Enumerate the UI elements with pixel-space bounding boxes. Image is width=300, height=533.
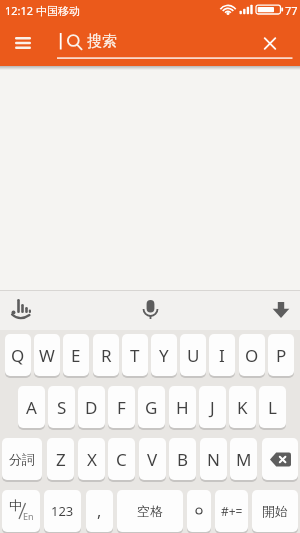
staticText: 12:12 中国移动 <box>5 3 80 18</box>
staticText: C <box>116 448 127 471</box>
button[interactable]: Y <box>151 334 177 376</box>
button[interactable]: 123 <box>44 490 81 532</box>
staticText: , <box>97 500 102 522</box>
button[interactable]: Z <box>47 438 74 480</box>
button[interactable]: H <box>169 386 196 428</box>
staticText: E <box>71 344 81 367</box>
staticText: #+= <box>221 503 243 519</box>
button[interactable]: F <box>108 386 135 428</box>
staticText: K <box>237 396 248 419</box>
button[interactable]: T <box>122 334 148 376</box>
button[interactable]: X <box>78 438 105 480</box>
staticText: X <box>87 448 97 471</box>
staticText: 搜索 <box>87 32 117 51</box>
button[interactable]: S <box>48 386 75 428</box>
staticText: 開始 <box>262 503 288 519</box>
staticText: 分詞 <box>9 451 35 467</box>
button[interactable] <box>260 291 300 330</box>
button[interactable]: 開始 <box>252 490 298 532</box>
button[interactable]: U <box>180 334 206 376</box>
staticText: 中 <box>9 497 22 513</box>
button[interactable] <box>2 291 42 330</box>
button[interactable]: V <box>139 438 166 480</box>
staticText: B <box>177 448 189 471</box>
button[interactable]: A <box>18 386 45 428</box>
staticText: I <box>219 344 225 367</box>
button[interactable]: 空格 <box>117 490 183 532</box>
button[interactable]: P <box>268 334 294 376</box>
staticText: Y <box>159 344 169 367</box>
staticText: G <box>145 396 158 419</box>
button[interactable]: #+= <box>215 490 248 532</box>
staticText: L <box>268 396 277 419</box>
button[interactable]: 分詞 <box>2 438 42 480</box>
button[interactable]: W <box>34 334 60 376</box>
button[interactable]: , <box>86 490 113 532</box>
staticText: Q <box>11 344 25 367</box>
staticText: 123 <box>51 502 74 520</box>
staticText: V <box>147 448 158 471</box>
staticText: 77 <box>285 3 298 18</box>
button[interactable]: Q <box>5 334 31 376</box>
button[interactable]: K <box>229 386 256 428</box>
staticText: D <box>85 396 98 419</box>
button[interactable]: 中 <box>2 490 40 532</box>
staticText: U <box>187 344 200 367</box>
button[interactable]: L <box>259 386 286 428</box>
button[interactable]: I <box>209 334 235 376</box>
button[interactable]: C <box>108 438 135 480</box>
staticText: O <box>245 344 259 367</box>
button[interactable] <box>187 490 211 532</box>
button[interactable] <box>254 28 286 58</box>
staticText: N <box>207 448 220 471</box>
button[interactable] <box>6 24 40 60</box>
button[interactable] <box>48 24 248 60</box>
staticText: S <box>57 396 67 419</box>
staticText: T <box>130 344 140 367</box>
staticText: R <box>101 344 112 367</box>
button[interactable]: B <box>169 438 196 480</box>
button[interactable]: O <box>239 334 265 376</box>
button[interactable]: M <box>230 438 257 480</box>
staticText: W <box>39 344 55 367</box>
staticText: En <box>23 510 34 522</box>
button[interactable]: R <box>93 334 119 376</box>
staticText: P <box>276 344 287 367</box>
staticText: F <box>117 396 126 419</box>
staticText: J <box>210 396 215 419</box>
button[interactable]: N <box>200 438 227 480</box>
button[interactable]: D <box>78 386 105 428</box>
button[interactable] <box>262 438 298 480</box>
staticText: A <box>26 396 37 419</box>
button[interactable]: E <box>63 334 89 376</box>
button[interactable] <box>130 291 170 330</box>
button[interactable]: G <box>138 386 165 428</box>
staticText: 空格 <box>137 503 163 519</box>
staticText: M <box>236 448 252 471</box>
staticText: H <box>176 396 189 419</box>
staticText: Z <box>56 448 66 471</box>
button[interactable]: J <box>199 386 226 428</box>
